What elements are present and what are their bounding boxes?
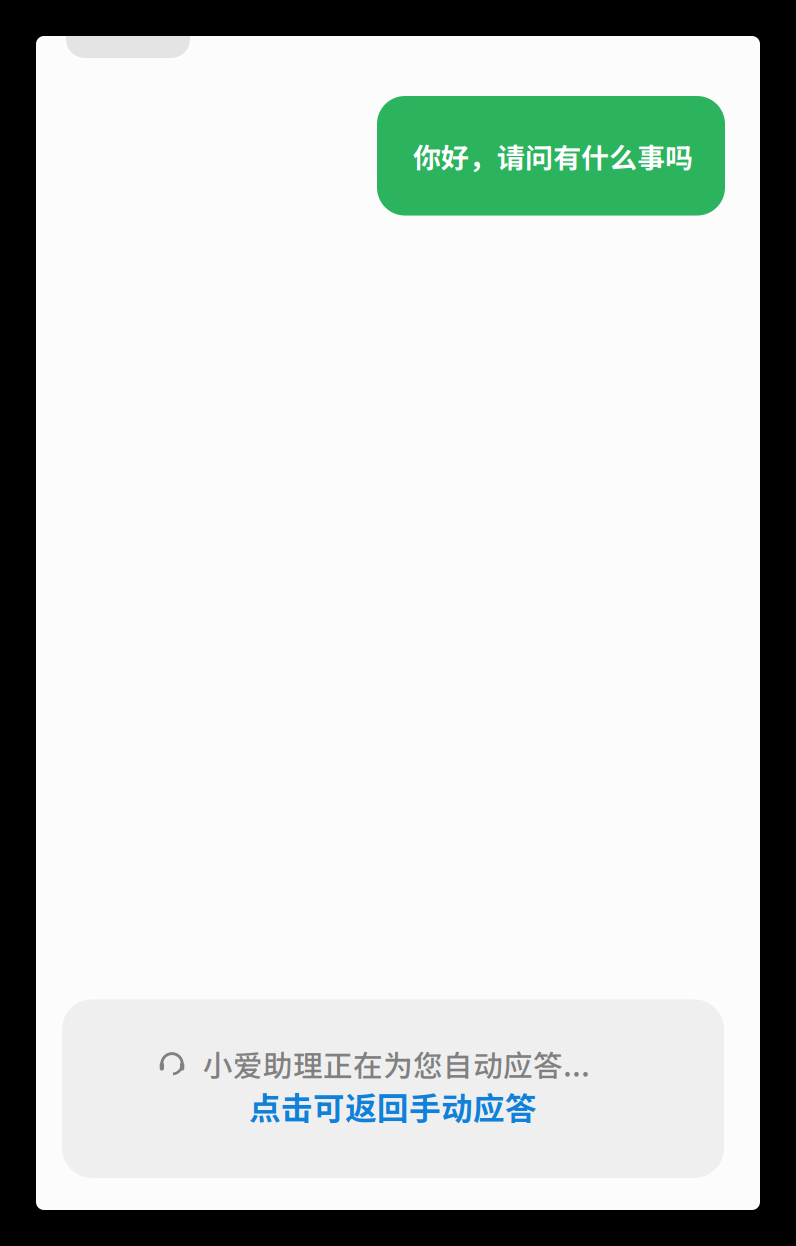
button[interactable]: 你好，请问有什么事吗 [377, 96, 725, 215]
button[interactable]: 小爱助理正在为您自动应答... [62, 999, 724, 1178]
staticText: 点击可返回手动应答 [249, 1083, 537, 1129]
staticText: 你好，请问有什么事吗 [413, 136, 693, 176]
staticText: 小爱助理正在为您自动应答... [203, 1042, 590, 1085]
